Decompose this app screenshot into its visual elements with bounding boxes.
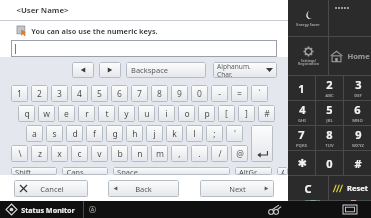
button[interactable]: m	[151, 145, 168, 162]
button[interactable]: 2	[31, 85, 48, 102]
staticText: z	[38, 148, 42, 160]
staticText: r	[85, 108, 89, 120]
button[interactable]: =	[231, 85, 248, 102]
button[interactable]: r	[78, 105, 95, 122]
button[interactable]: Space	[113, 167, 230, 175]
button[interactable]: #	[258, 105, 275, 122]
button[interactable]: 1	[11, 85, 28, 102]
button[interactable]: 5	[316, 101, 343, 125]
button[interactable]: ✱	[288, 151, 315, 175]
button[interactable]: v	[91, 145, 108, 162]
button[interactable]: 3	[344, 76, 371, 100]
button[interactable]: l	[186, 125, 203, 142]
button[interactable]: 2	[316, 76, 343, 100]
button[interactable]: i	[158, 105, 175, 122]
button[interactable]: a	[26, 125, 43, 142]
button[interactable]: /	[211, 145, 228, 162]
button[interactable]: 9	[171, 85, 188, 102]
button[interactable]: 0	[191, 85, 208, 102]
button[interactable]: @	[231, 145, 248, 162]
staticText: 7	[298, 127, 305, 142]
button[interactable]: p	[198, 105, 215, 122]
button[interactable]: t	[98, 105, 115, 122]
button[interactable]: Caps	[62, 167, 108, 175]
button[interactable]: Alt	[277, 167, 288, 175]
staticText: 5	[97, 88, 102, 100]
button[interactable]: 0	[316, 151, 343, 175]
staticText: Energy Saver	[296, 22, 320, 27]
staticText: #	[354, 156, 362, 171]
button[interactable]: \	[11, 145, 28, 162]
button[interactable]: 5	[91, 85, 108, 102]
button[interactable]: Back	[108, 180, 179, 197]
button[interactable]: Mobile link	[262, 201, 288, 218]
button[interactable]: Counter	[328, 201, 371, 218]
button[interactable]: `	[251, 85, 268, 102]
button[interactable]: .	[191, 145, 208, 162]
button[interactable]: Settings/Registration	[288, 37, 328, 75]
staticText: WXYZ	[352, 143, 364, 149]
staticText: Settings/ Registration	[298, 58, 319, 66]
button[interactable]: AltGr	[235, 167, 272, 175]
button[interactable]: 8	[151, 85, 168, 102]
staticText: JKL	[326, 118, 333, 124]
staticText: '	[234, 128, 236, 140]
button[interactable]: 6	[344, 101, 371, 125]
button[interactable]	[11, 40, 277, 57]
button[interactable]: Enter	[251, 125, 273, 162]
button[interactable]: 1	[288, 76, 315, 100]
button[interactable]: b	[111, 145, 128, 162]
button[interactable]: Home	[329, 37, 371, 75]
button[interactable]: ,	[171, 145, 188, 162]
button[interactable]: Alphanum. Char.	[213, 62, 277, 78]
button[interactable]: Cancel	[14, 180, 88, 197]
staticText: n	[137, 148, 143, 160]
button[interactable]: n	[131, 145, 148, 162]
button[interactable]: 4	[71, 85, 88, 102]
button[interactable]: s	[46, 125, 63, 142]
button[interactable]: ]	[238, 105, 255, 122]
button[interactable]: #	[344, 151, 371, 175]
button[interactable]: 4	[288, 101, 315, 125]
button[interactable]: [	[218, 105, 235, 122]
staticText: ;	[213, 128, 216, 140]
button[interactable]: c	[71, 145, 88, 162]
button[interactable]: Shift	[11, 167, 57, 175]
button[interactable]: Energy Saver	[288, 0, 328, 36]
button[interactable]: 9	[344, 126, 371, 150]
button[interactable]: o	[178, 105, 195, 122]
button[interactable]: q	[18, 105, 35, 122]
button[interactable]: 7	[131, 85, 148, 102]
button[interactable]: 8	[316, 126, 343, 150]
staticText: i	[165, 108, 168, 120]
button[interactable]: -	[211, 85, 228, 102]
button[interactable]: y	[118, 105, 135, 122]
button[interactable]: Reset	[329, 176, 371, 200]
button[interactable]: 3	[51, 85, 68, 102]
button[interactable]: C	[288, 176, 328, 200]
button[interactable]: 6	[111, 85, 128, 102]
button[interactable]: z	[31, 145, 48, 162]
button[interactable]: Backspace	[126, 62, 206, 78]
button[interactable]: '	[226, 125, 243, 142]
staticText: Shift	[15, 167, 31, 175]
button[interactable]: x	[51, 145, 68, 162]
button[interactable]: u	[138, 105, 155, 122]
staticText: k	[172, 128, 177, 140]
button[interactable]: Move cursor left	[72, 62, 94, 78]
button[interactable]: h	[126, 125, 143, 142]
button[interactable]: j	[146, 125, 163, 142]
button[interactable]: d	[66, 125, 83, 142]
button[interactable]: Move cursor right	[99, 62, 121, 78]
button[interactable]: e	[58, 105, 75, 122]
button[interactable]: g	[106, 125, 123, 142]
button[interactable]: Next	[200, 180, 274, 197]
staticText: Back	[135, 184, 152, 194]
button[interactable]: Status Monitor	[0, 201, 75, 218]
button[interactable]: w	[38, 105, 55, 122]
button[interactable]: 7	[288, 126, 315, 150]
button[interactable]: f	[86, 125, 103, 142]
staticText: 0	[326, 156, 333, 171]
button[interactable]: k	[166, 125, 183, 142]
button[interactable]: ;	[206, 125, 223, 142]
